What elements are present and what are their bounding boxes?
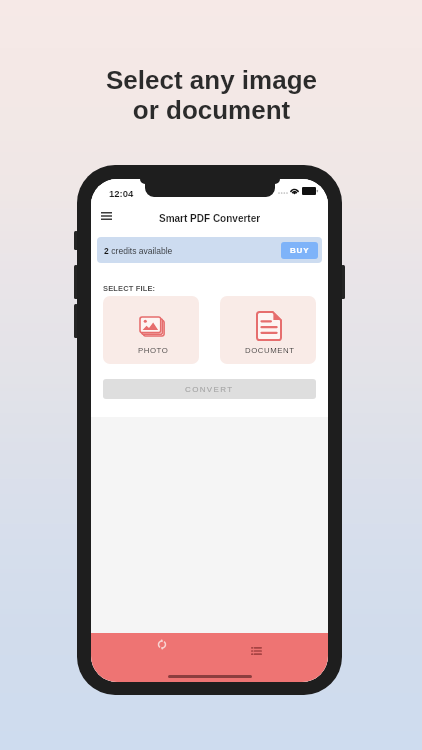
staticText: Select any image or document	[106, 65, 317, 125]
staticText: BUY	[290, 246, 310, 255]
staticText: PHOTO	[138, 346, 169, 355]
staticText: DOCUMENT	[245, 346, 295, 355]
staticText: 12:04	[109, 188, 134, 199]
button[interactable]: PHOTO	[103, 296, 199, 364]
staticText: CONVERT	[185, 385, 234, 394]
button[interactable]: BUY	[281, 242, 318, 259]
staticText: SELECT FILE:	[103, 284, 156, 292]
button[interactable]: Convert	[144, 634, 179, 655]
button[interactable]: Menu	[94, 204, 118, 228]
button[interactable]: DOCUMENT	[220, 296, 316, 364]
button[interactable]: History	[239, 640, 274, 661]
staticText: credits available	[109, 246, 173, 255]
staticText: 2	[104, 246, 109, 255]
button[interactable]: CONVERT	[103, 379, 316, 399]
staticText: Smart PDF Converter	[159, 213, 261, 224]
